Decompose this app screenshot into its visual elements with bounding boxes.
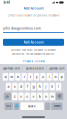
button[interactable]: j	[43, 83, 49, 90]
staticText: f	[27, 84, 28, 89]
staticText: n	[45, 94, 47, 98]
button[interactable]: p	[59, 73, 64, 81]
staticText: b	[39, 94, 41, 98]
staticText: z	[14, 94, 16, 98]
staticText: g	[32, 84, 34, 89]
staticText: u	[42, 75, 44, 79]
button[interactable]: s	[12, 83, 17, 90]
button[interactable]: g	[31, 83, 36, 90]
staticText: ⌫	[58, 95, 62, 98]
button[interactable]: a	[6, 83, 11, 90]
staticText: e	[17, 75, 19, 79]
staticText: space	[28, 105, 36, 108]
button[interactable]: z	[12, 93, 17, 100]
button[interactable]: k	[50, 83, 55, 90]
button[interactable]: l	[56, 83, 61, 90]
staticText: x	[20, 94, 22, 98]
button[interactable]: o	[53, 73, 58, 81]
staticText: a	[7, 84, 9, 89]
staticText: i	[49, 75, 50, 79]
staticText: .	[47, 104, 48, 108]
staticText: 123	[6, 105, 11, 108]
staticText: m	[51, 94, 54, 98]
button[interactable]: space	[20, 102, 44, 110]
staticText: r	[24, 75, 25, 79]
button[interactable]: ⌫	[56, 93, 63, 100]
button[interactable]: r	[21, 73, 27, 81]
button[interactable]: Add Account	[3, 39, 64, 46]
staticText: q	[4, 75, 6, 79]
staticText: and services. You can unsubscribe anytim…	[12, 53, 55, 56]
staticText: l	[58, 84, 59, 89]
staticText: john.doe@contoso.com	[3, 27, 41, 30]
button[interactable]: v	[31, 93, 36, 100]
staticText: @outlook.com	[25, 67, 43, 70]
staticText: @hotmail.com	[3, 67, 20, 70]
staticText: Microsoft may email you about its produc…	[11, 49, 56, 52]
button[interactable]: m	[50, 93, 55, 100]
button[interactable]: 🌐	[14, 102, 19, 110]
button[interactable]: ⇧	[4, 93, 11, 100]
button[interactable]: c	[25, 93, 30, 100]
button[interactable]: h	[37, 83, 42, 90]
staticText: y	[36, 75, 38, 79]
staticText: ⇧	[5, 94, 9, 98]
button[interactable]: Add Account	[0, 5, 67, 12]
staticText: t	[30, 75, 31, 79]
staticText: h	[39, 84, 41, 89]
button[interactable]: w	[9, 73, 14, 81]
staticText: Enter your email or phone number	[7, 14, 59, 17]
staticText: d	[20, 84, 22, 89]
button[interactable]: n	[43, 93, 49, 100]
button[interactable]: return	[51, 102, 62, 110]
staticText: p	[61, 75, 63, 79]
staticText: o	[54, 75, 56, 79]
button[interactable]: b	[37, 93, 42, 100]
button[interactable]: q	[3, 73, 8, 81]
staticText: Privacy & Cookies	[22, 60, 44, 63]
button[interactable]: x	[18, 93, 24, 100]
staticText: return	[54, 105, 60, 108]
staticText: w	[10, 75, 13, 79]
button[interactable]: Privacy & Cookies	[22, 59, 44, 63]
staticText: c	[26, 94, 28, 98]
button[interactable]: t	[28, 73, 33, 81]
button[interactable]: d	[18, 83, 24, 90]
button[interactable]: i	[46, 73, 52, 81]
staticText: 9:41	[3, 1, 9, 4]
staticText: v	[32, 94, 34, 98]
button[interactable]: .	[45, 102, 50, 110]
button[interactable]: u	[40, 73, 45, 81]
staticText: k	[51, 84, 53, 89]
button[interactable]: y	[34, 73, 39, 81]
button[interactable]: f	[25, 83, 30, 90]
staticText: Add Account	[23, 40, 43, 44]
button[interactable]: e	[15, 73, 20, 81]
staticText: s	[14, 84, 16, 89]
staticText: 🌐	[15, 104, 19, 108]
staticText: Add Account	[23, 7, 43, 10]
button[interactable]: 123	[4, 102, 13, 110]
staticText: @gmail.com	[49, 67, 64, 70]
